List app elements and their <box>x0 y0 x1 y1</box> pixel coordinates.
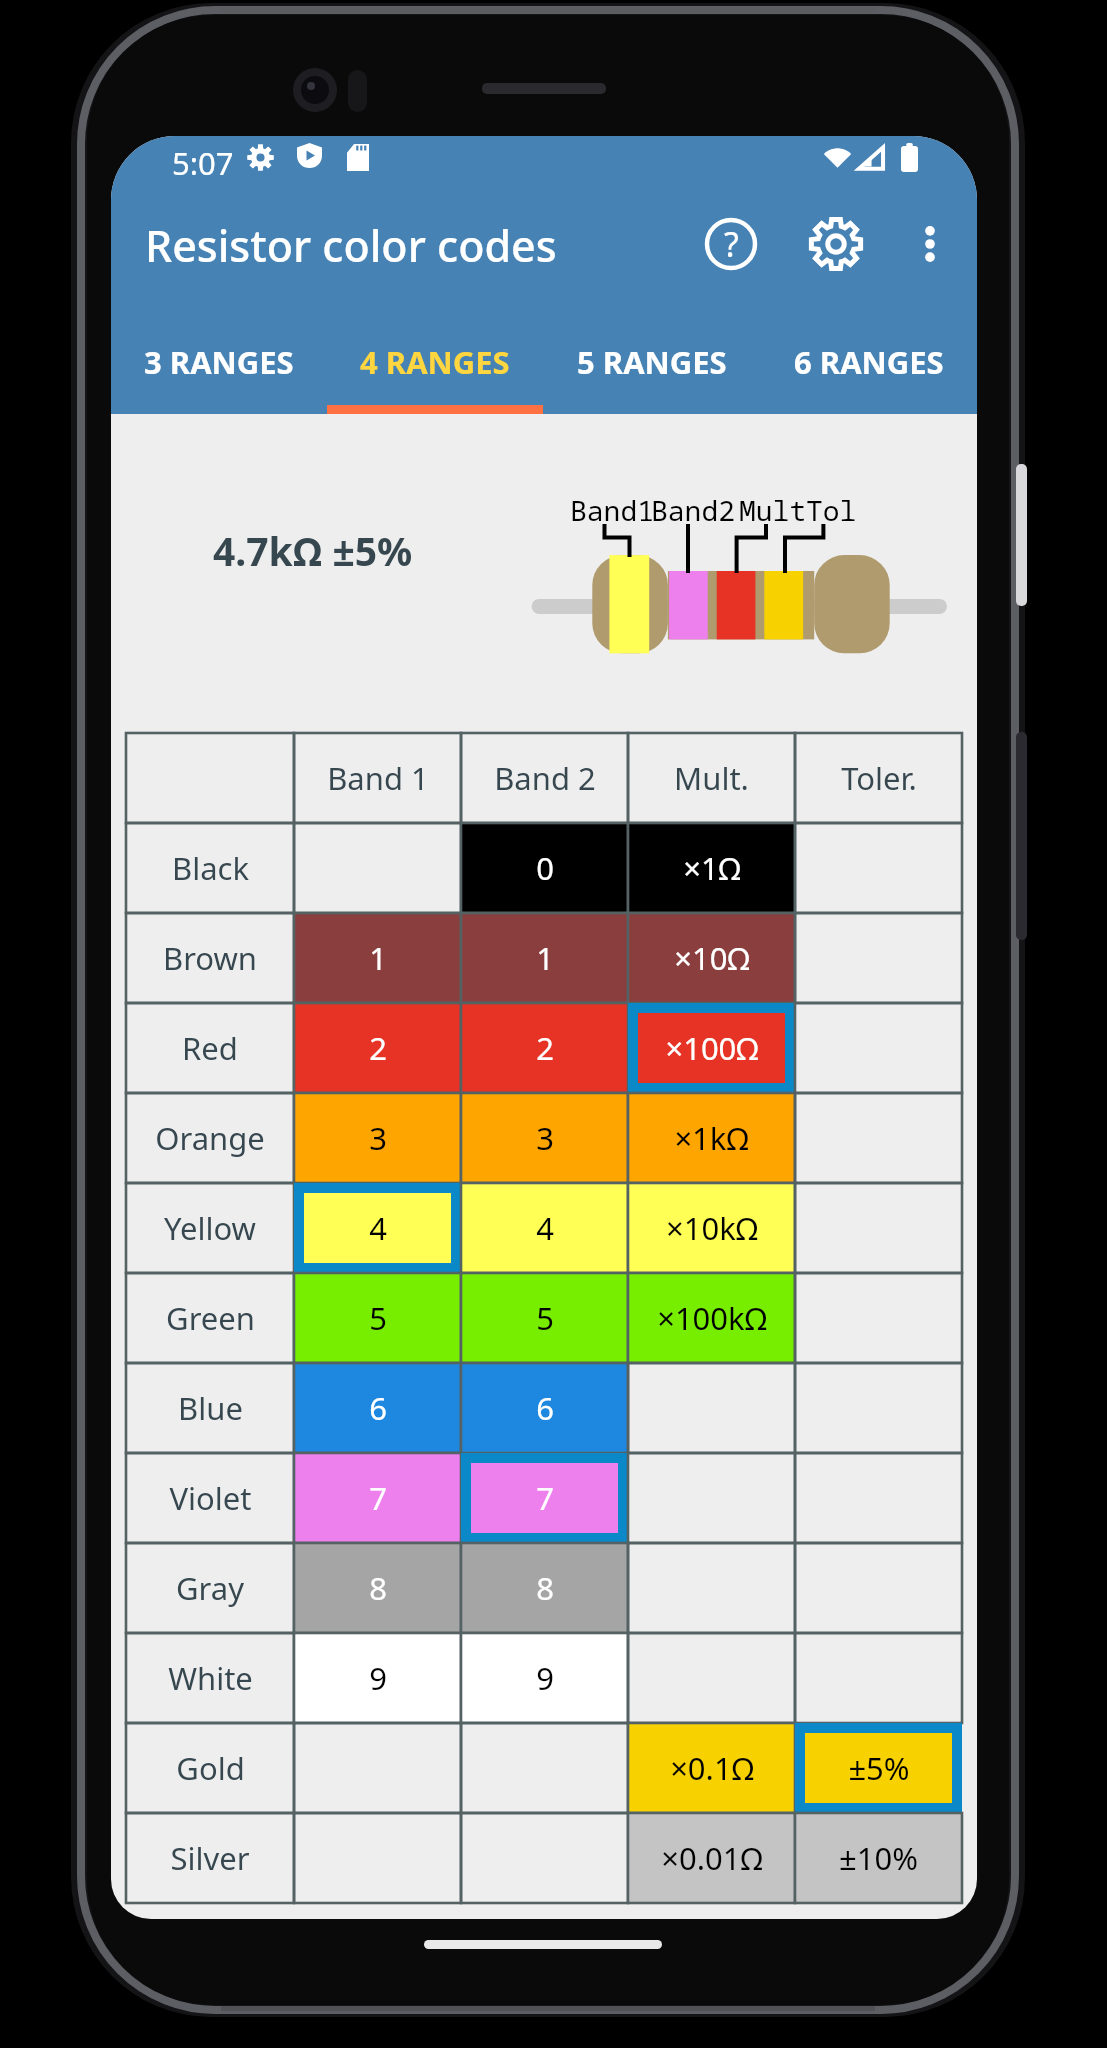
staticText: White <box>168 1657 253 1699</box>
staticText: 1 <box>536 937 554 979</box>
button[interactable]: Settings <box>792 200 880 288</box>
staticText: ×1Ω <box>683 847 741 889</box>
staticText: ×100kΩ <box>657 1297 767 1339</box>
staticText: 3 <box>369 1117 387 1159</box>
button[interactable]: Yellow <box>126 1183 962 1273</box>
button[interactable]: Orange <box>126 1093 962 1183</box>
staticText: Mult <box>739 491 807 529</box>
staticText: Gold <box>176 1747 245 1789</box>
staticText: 5 RANGES <box>577 341 727 383</box>
button[interactable]: White <box>126 1633 962 1723</box>
staticText: 6 <box>369 1387 387 1429</box>
staticText: 8 <box>369 1567 387 1609</box>
button[interactable]: Gray <box>126 1543 962 1633</box>
staticText: 5:07 <box>172 142 234 184</box>
button[interactable]: Blue <box>126 1363 962 1453</box>
staticText: Band 1 <box>327 757 429 799</box>
staticText: ×10Ω <box>674 937 750 979</box>
button[interactable]: 6 RANGES <box>760 306 977 414</box>
button[interactable]: Black <box>126 823 962 913</box>
button[interactable]: Green <box>126 1273 962 1363</box>
staticText: Orange <box>155 1117 265 1159</box>
staticText: 5 <box>536 1297 554 1339</box>
button[interactable]: Brown <box>126 913 962 1003</box>
button[interactable]: Help <box>687 200 775 288</box>
staticText: ±10% <box>839 1837 918 1879</box>
button[interactable]: More options <box>896 210 964 278</box>
staticText: 7 <box>369 1477 387 1519</box>
staticText: 8 <box>536 1567 554 1609</box>
button[interactable]: 4 RANGES <box>327 306 543 414</box>
staticText: Yellow <box>164 1207 256 1249</box>
staticText: Resistor color codes <box>145 216 557 275</box>
button[interactable]: 3 RANGES <box>111 306 327 414</box>
staticText: Violet <box>169 1477 252 1519</box>
staticText: 2 <box>536 1027 554 1069</box>
staticText: Red <box>182 1027 238 1069</box>
staticText: Black <box>172 847 249 889</box>
staticText: Toler. <box>841 757 917 799</box>
staticText: 2 <box>369 1027 387 1069</box>
staticText: 6 RANGES <box>794 341 944 383</box>
staticText: Green <box>166 1297 255 1339</box>
button[interactable]: Silver <box>126 1813 962 1903</box>
staticText: ×1kΩ <box>674 1117 749 1159</box>
staticText: ×10kΩ <box>666 1207 758 1249</box>
staticText: Gray <box>176 1567 244 1609</box>
staticText: Band 2 <box>494 757 596 799</box>
staticText: Silver <box>170 1837 250 1879</box>
staticText: 5 <box>369 1297 387 1339</box>
button[interactable]: Gold <box>126 1723 962 1813</box>
staticText: 1 <box>369 937 387 979</box>
button[interactable]: Red <box>126 1003 962 1093</box>
staticText: ×0.1Ω <box>670 1747 754 1789</box>
staticText: ×100Ω <box>665 1027 759 1069</box>
staticText: Band2 <box>651 491 736 529</box>
staticText: ? <box>724 221 739 267</box>
staticText: Brown <box>163 937 257 979</box>
staticText: 4.7kΩ ±5% <box>213 524 413 577</box>
staticText: 4 RANGES <box>360 341 510 383</box>
button[interactable]: Violet <box>126 1453 962 1543</box>
button[interactable]: 5 RANGES <box>543 306 760 414</box>
staticText: 0 <box>536 847 554 889</box>
staticText: 4 <box>536 1207 554 1249</box>
staticText: Band1 <box>570 491 655 529</box>
staticText: Tol <box>806 491 857 529</box>
staticText: 7 <box>536 1477 554 1519</box>
staticText: ×0.01Ω <box>661 1837 763 1879</box>
staticText: 3 <box>536 1117 554 1159</box>
staticText: 3 RANGES <box>144 341 294 383</box>
staticText: Mult. <box>674 757 749 799</box>
staticText: 6 <box>536 1387 554 1429</box>
staticText: 9 <box>536 1657 554 1699</box>
staticText: Blue <box>178 1387 243 1429</box>
staticText: 4 <box>369 1207 387 1249</box>
staticText: ±5% <box>848 1747 910 1789</box>
staticText: 9 <box>369 1657 387 1699</box>
